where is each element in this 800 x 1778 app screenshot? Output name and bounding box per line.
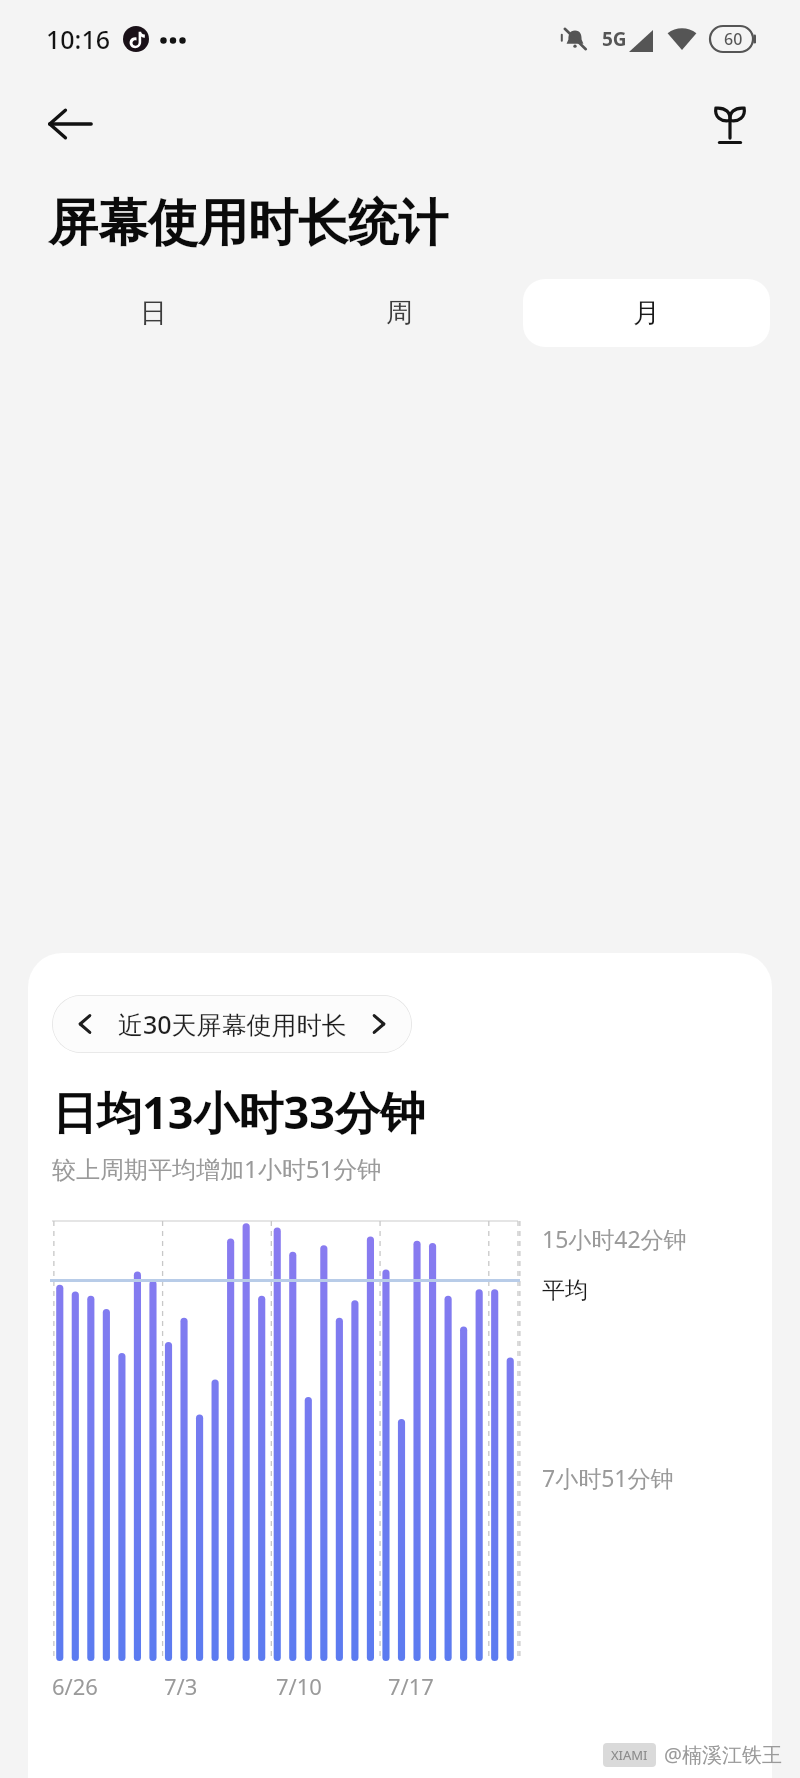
staticText: 月 bbox=[633, 296, 660, 330]
staticText: XIAMI bbox=[611, 1746, 648, 1764]
button[interactable]: 月 bbox=[523, 279, 770, 347]
staticText: 60 bbox=[724, 28, 743, 50]
button[interactable]: 日 bbox=[30, 279, 276, 347]
staticText: 平均 bbox=[542, 1276, 588, 1305]
staticText: 7/17 bbox=[388, 1671, 434, 1701]
staticText: 近30天屏幕使用时长 bbox=[118, 1007, 347, 1041]
button[interactable]: Back bbox=[30, 84, 110, 164]
staticText: 周 bbox=[386, 296, 413, 330]
staticText: 15小时42分钟 bbox=[542, 1223, 687, 1254]
staticText: 7/10 bbox=[276, 1671, 322, 1701]
staticText: 7/3 bbox=[164, 1671, 198, 1701]
staticText: 7小时51分钟 bbox=[542, 1462, 674, 1493]
staticText: 屏幕使用时长统计 bbox=[48, 192, 448, 255]
staticText: 6/26 bbox=[52, 1671, 98, 1701]
button[interactable]: 周 bbox=[276, 279, 523, 347]
staticText: 10:16 bbox=[46, 22, 111, 56]
staticText: 较上周期平均增加1小时51分钟 bbox=[52, 1152, 382, 1185]
button[interactable]: Focus mode bbox=[692, 86, 768, 162]
staticText: 日均13小时33分钟 bbox=[52, 1081, 425, 1142]
staticText: 日 bbox=[140, 296, 167, 330]
staticText: @楠溪江铁王 bbox=[664, 1741, 782, 1768]
button[interactable]: 近30天屏幕使用时长 bbox=[52, 995, 412, 1053]
staticText: 5G bbox=[602, 26, 627, 52]
